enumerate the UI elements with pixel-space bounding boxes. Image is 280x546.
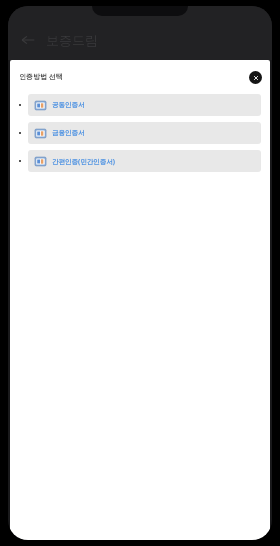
- button[interactable]: 금융인증서: [28, 122, 261, 144]
- button[interactable]: Back: [16, 28, 40, 52]
- staticText: 공동인증서: [52, 101, 85, 109]
- button[interactable]: 공동인증서: [28, 94, 261, 116]
- staticText: 간편인증(민간인증서): [52, 157, 115, 166]
- staticText: 금융인증서: [52, 129, 85, 137]
- button[interactable]: 간편인증(민간인증서): [28, 150, 261, 172]
- staticText: 보증드림: [46, 32, 98, 48]
- button[interactable]: Close: [249, 71, 262, 84]
- staticText: 인증방법 선택: [19, 72, 63, 82]
